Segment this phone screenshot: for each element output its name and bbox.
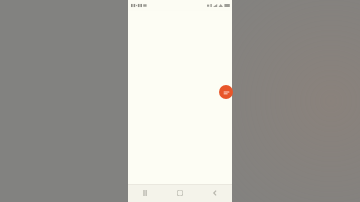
button[interactable]: Recent apps: [128, 184, 162, 202]
button[interactable]: Home: [162, 184, 197, 202]
button[interactable]: Back: [197, 184, 232, 202]
button[interactable]: Compose: [219, 85, 233, 99]
